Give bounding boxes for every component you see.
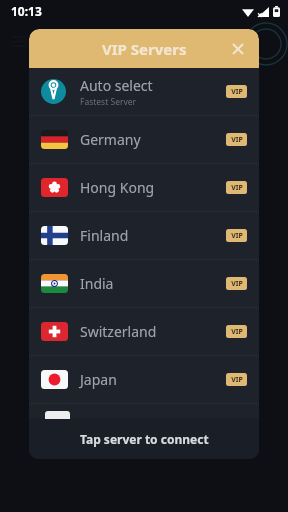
staticText: Hong Kong (80, 178, 226, 197)
staticText: Switzerland (80, 322, 226, 341)
button[interactable]: Japan (29, 356, 259, 403)
button[interactable]: Switzerland (29, 308, 259, 355)
staticText: Fastest Server (80, 96, 137, 108)
button[interactable]: Auto select (29, 68, 259, 115)
staticText: VIP (231, 375, 243, 385)
button[interactable]: Finland (29, 212, 259, 259)
staticText: Tap server to connect (80, 431, 209, 447)
staticText: VIP (231, 135, 243, 145)
staticText: Japan (80, 370, 226, 389)
staticText: India (80, 274, 226, 293)
staticText: VIP (231, 87, 243, 97)
staticText: Auto select (80, 76, 153, 95)
button[interactable]: Tap server to connect (29, 419, 259, 459)
staticText: VIP Servers (102, 39, 187, 59)
button[interactable]: Germany (29, 116, 259, 163)
button[interactable]: Close (227, 38, 249, 60)
staticText: 10:13 (11, 3, 42, 19)
button[interactable]: Hong Kong (29, 164, 259, 211)
staticText: VIP (231, 183, 243, 193)
staticText: VIP (231, 231, 243, 241)
staticText: VIP (231, 327, 243, 337)
staticText: Finland (80, 226, 226, 245)
staticText: Germany (80, 130, 226, 149)
staticText: VIP (231, 279, 243, 289)
button[interactable]: India (29, 260, 259, 307)
